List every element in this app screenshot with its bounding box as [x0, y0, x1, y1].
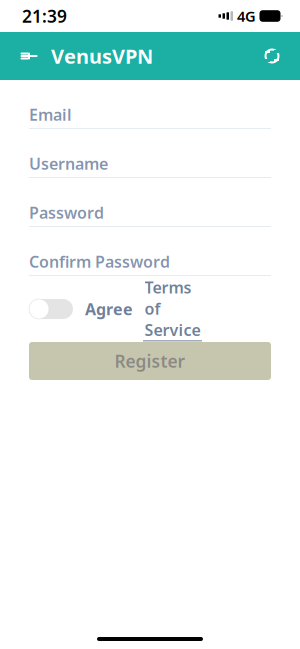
button[interactable]: Refresh — [252, 32, 292, 80]
staticText: Register — [114, 349, 185, 372]
staticText: VenusVPN — [51, 43, 153, 69]
button[interactable]: Back — [12, 32, 46, 80]
staticText: Agree — [85, 298, 133, 320]
button[interactable]: Terms of Service — [133, 277, 202, 341]
staticText: 4G — [237, 6, 256, 26]
button[interactable]: Agree to terms — [29, 299, 73, 319]
staticText: 21:39 — [22, 4, 67, 27]
staticText: Terms of Service — [144, 277, 200, 340]
staticText: Email — [29, 104, 72, 125]
staticText: Password — [29, 202, 104, 223]
staticText: Username — [29, 153, 108, 174]
button[interactable]: Register — [29, 342, 271, 380]
staticText: Confirm Password — [29, 251, 170, 272]
